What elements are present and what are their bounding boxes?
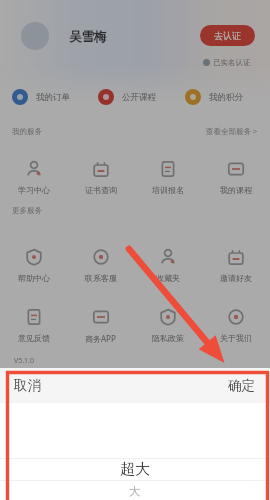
staticText: 邀请好友 (220, 273, 252, 283)
button[interactable]: 我的积分 (185, 89, 243, 105)
staticText: 意见反馈 (18, 333, 50, 343)
button[interactable]: 学习中心 (0, 159, 67, 195)
staticText: 我的课程 (220, 185, 252, 195)
staticText: 我的服务 (12, 127, 42, 136)
button[interactable]: 关于我们 (202, 307, 270, 343)
button[interactable]: 商务APP (67, 307, 134, 344)
button[interactable]: 取消 (0, 370, 53, 401)
staticText: 我的积分 (209, 92, 243, 103)
staticText: 培训报名 (152, 185, 184, 195)
staticText: 更多服务 (12, 206, 42, 215)
staticText: 公开课程 (122, 92, 156, 103)
staticText: 去认证 (214, 30, 241, 41)
button[interactable]: 我的订单 (12, 89, 70, 105)
staticText: 学习中心 (18, 185, 50, 195)
button[interactable]: 大 (0, 481, 270, 500)
staticText: V5.1.0 (14, 356, 34, 366)
staticText: 我的订单 (36, 92, 70, 103)
button[interactable]: 培训报名 (134, 159, 202, 195)
button[interactable]: 我的课程 (202, 159, 270, 195)
staticText: 确定 (228, 377, 255, 394)
staticText: 关于我们 (220, 333, 252, 343)
staticText: 隐私政策 (152, 333, 184, 343)
staticText: 收藏夹 (156, 273, 180, 283)
button[interactable]: 超大 (0, 459, 270, 480)
staticText: 大 (129, 484, 141, 498)
staticText: 联系客服 (85, 273, 117, 283)
button[interactable]: Avatar (21, 22, 49, 50)
staticText: 商务APP (85, 333, 116, 344)
staticText: 超大 (120, 460, 150, 479)
button[interactable]: 公开课程 (98, 89, 156, 105)
staticText: 已实名认证 (213, 58, 251, 67)
staticText: 证书查询 (85, 185, 117, 195)
staticText: 帮助中心 (18, 273, 50, 283)
button[interactable]: 去认证 (200, 25, 255, 46)
button[interactable]: 意见反馈 (0, 307, 67, 343)
staticText: 吴雪梅 (69, 29, 107, 45)
button[interactable]: 隐私政策 (134, 307, 202, 343)
button[interactable]: 邀请好友 (202, 247, 270, 283)
staticText: 查看全部服务 > (206, 126, 258, 136)
staticText: 取消 (14, 377, 41, 394)
button[interactable]: 收藏夹 (134, 247, 202, 283)
button[interactable]: 帮助中心 (0, 247, 67, 283)
button[interactable]: 联系客服 (67, 247, 134, 283)
button[interactable]: 证书查询 (67, 159, 134, 195)
button[interactable]: 确定 (216, 370, 270, 401)
button[interactable]: 已实名认证 (203, 58, 251, 67)
